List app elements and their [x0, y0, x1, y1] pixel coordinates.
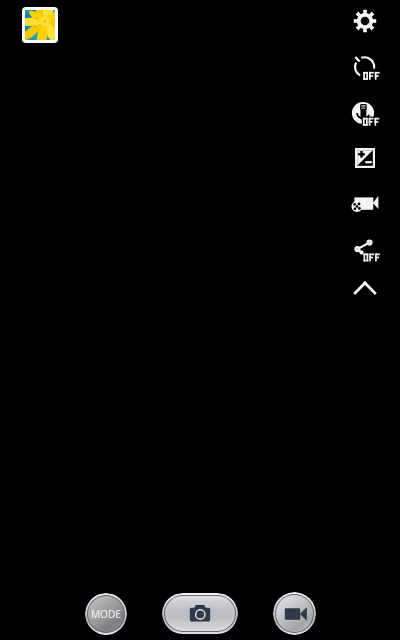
staticText: MODE — [91, 607, 121, 621]
button[interactable]: Sharing off — [344, 228, 384, 268]
button[interactable]: Settings — [345, 1, 385, 41]
button[interactable]: Voice control off — [343, 93, 383, 133]
button[interactable]: Exposure value — [345, 138, 385, 178]
button[interactable]: Timer off — [345, 48, 385, 88]
button[interactable]: Record video — [273, 592, 316, 635]
button[interactable]: Recording mode — [345, 184, 385, 224]
button[interactable]: Gallery — [22, 7, 58, 43]
button[interactable]: More options — [345, 268, 385, 308]
button[interactable]: Take photo — [162, 593, 238, 634]
button[interactable]: Mode — [85, 593, 127, 635]
